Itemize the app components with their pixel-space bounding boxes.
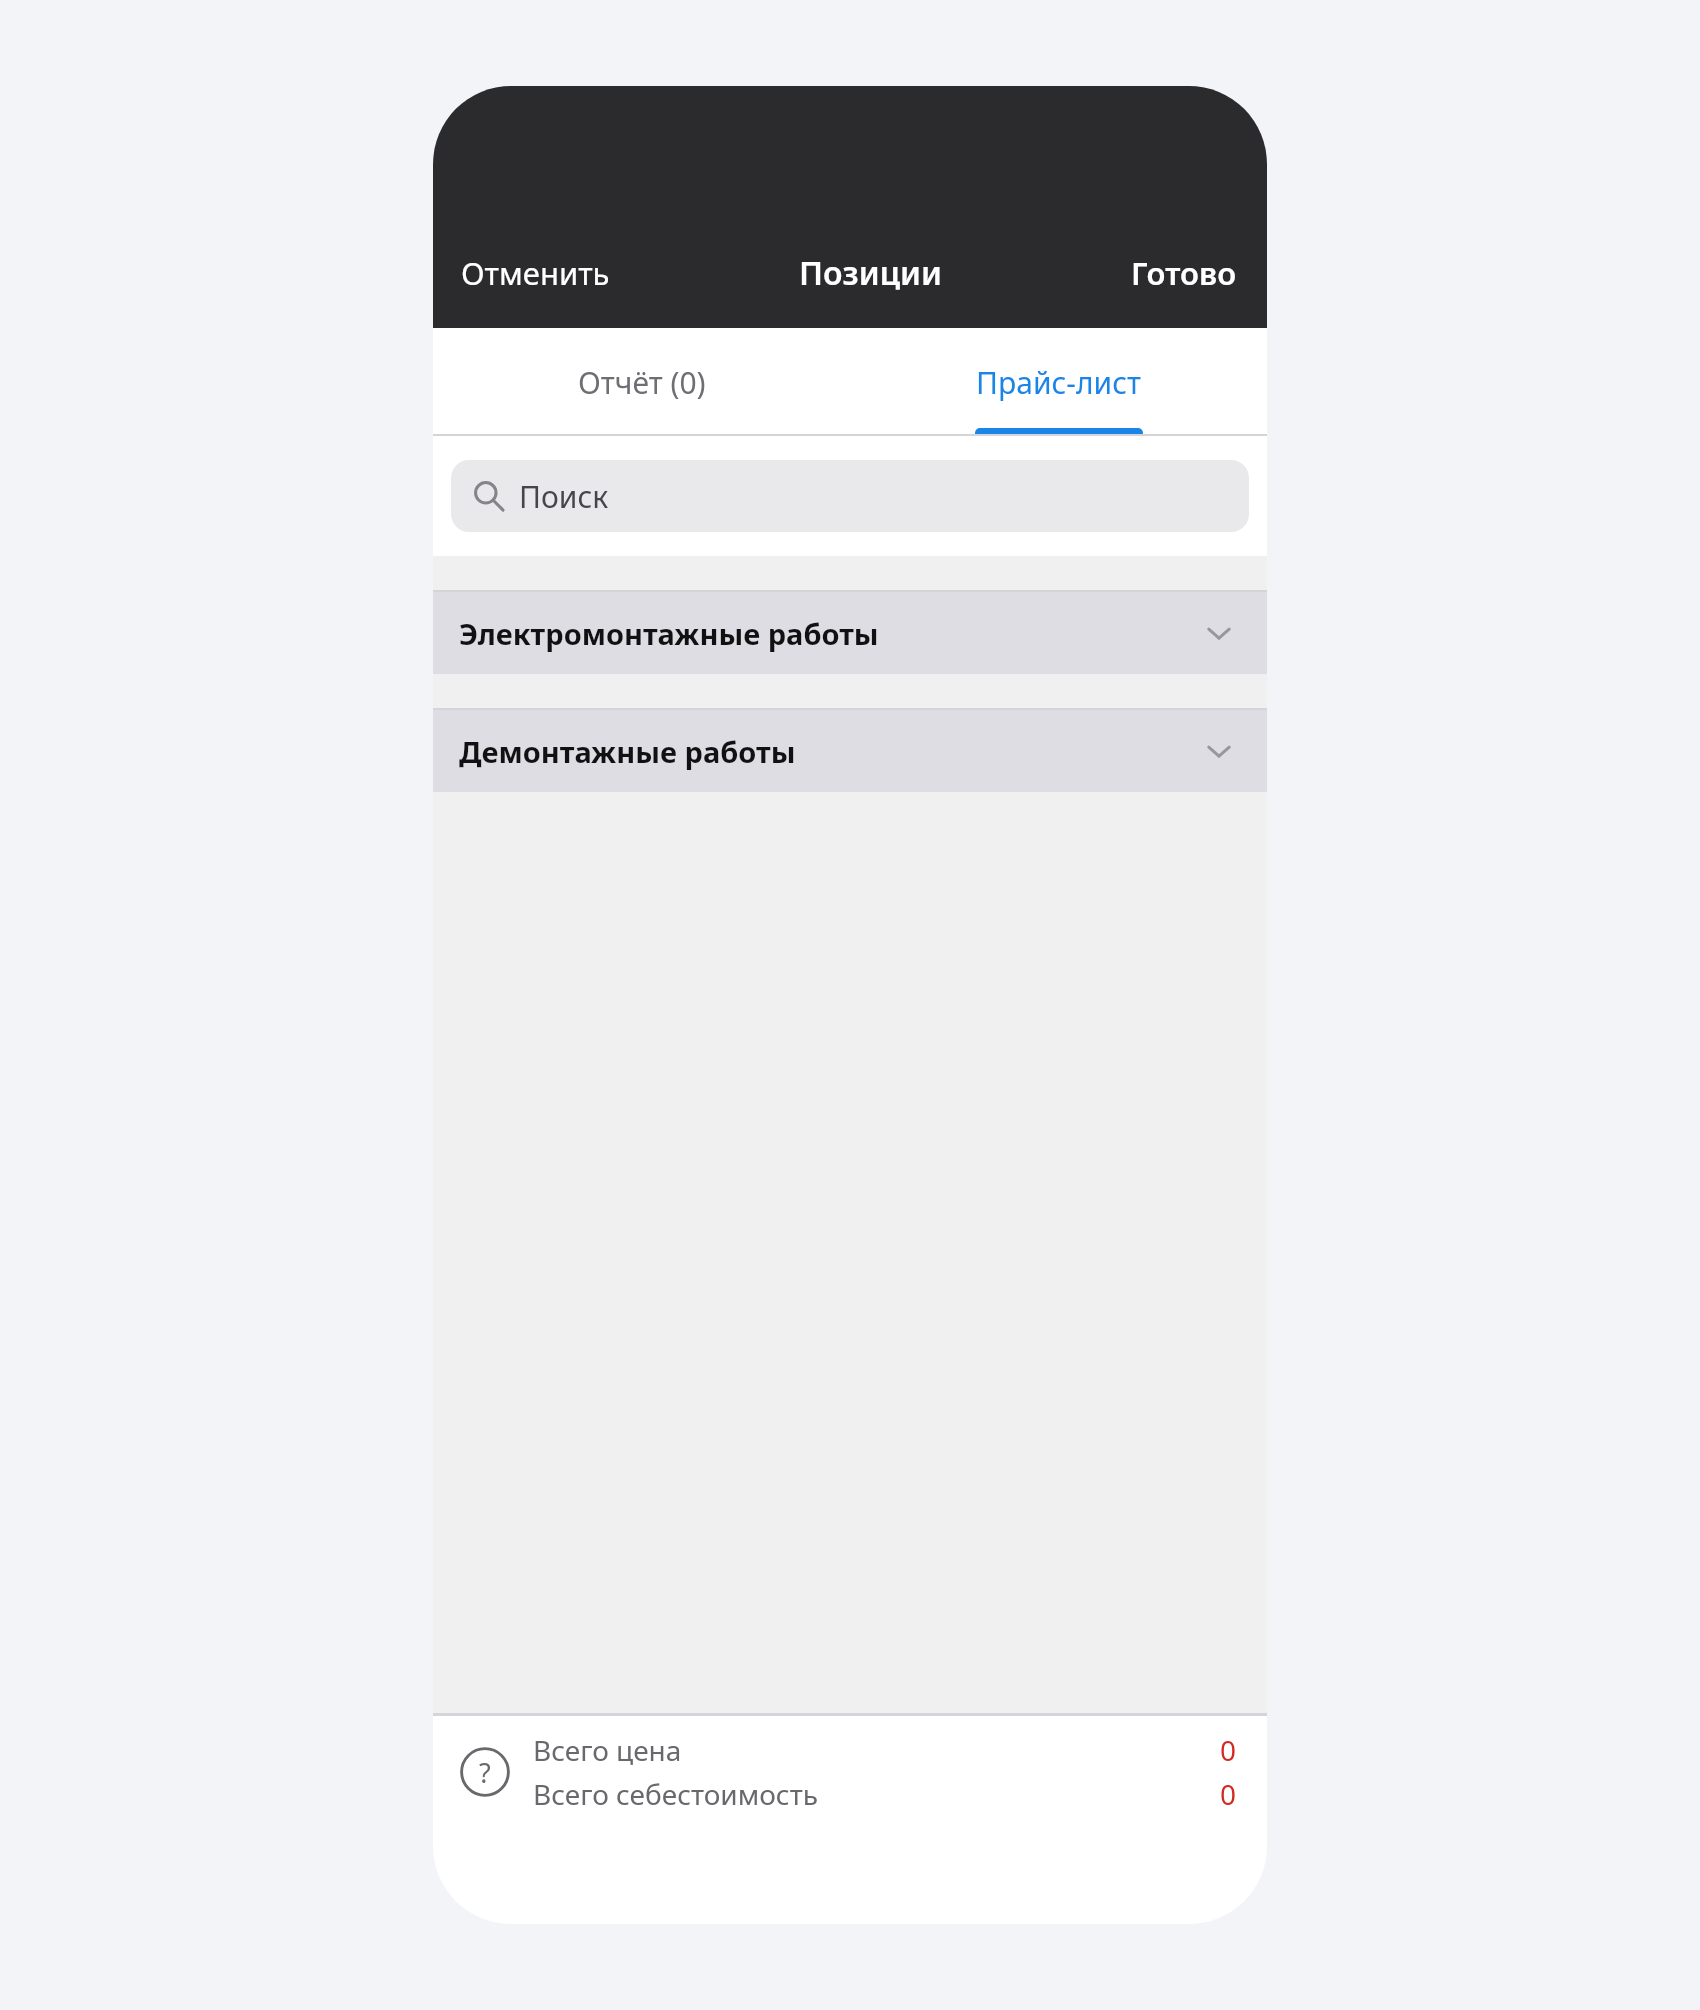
button[interactable]: Электромонтажные работы <box>433 592 1267 674</box>
staticText: Прайс-лист <box>976 362 1141 403</box>
staticText: Демонтажные работы <box>459 732 796 771</box>
button[interactable]: Прайс-лист <box>850 328 1267 436</box>
staticText: Всего цена <box>533 1731 682 1769</box>
staticText: Позиции <box>799 251 942 295</box>
staticText: Готово <box>1131 252 1237 294</box>
staticText: Электромонтажные работы <box>459 614 879 653</box>
staticText: Отчёт (0) <box>578 362 706 403</box>
other: Help <box>459 1746 511 1798</box>
button[interactable]: Готово <box>1117 244 1267 302</box>
other: Expand section <box>1197 611 1241 655</box>
button[interactable]: Отменить <box>433 244 624 302</box>
staticText: 0 <box>1220 1731 1237 1769</box>
button[interactable]: Демонтажные работы <box>433 710 1267 792</box>
button[interactable]: Help <box>433 1716 1267 1828</box>
staticText: Отменить <box>461 252 610 294</box>
button[interactable]: Отчёт (0) <box>433 328 850 436</box>
other: Expand section <box>1197 729 1241 773</box>
button[interactable]: Поиск <box>451 460 1249 532</box>
staticText: 0 <box>1220 1775 1237 1813</box>
staticText: Всего себестоимость <box>533 1775 818 1813</box>
staticText: ? <box>479 1754 491 1791</box>
staticText: Поиск <box>519 476 609 517</box>
